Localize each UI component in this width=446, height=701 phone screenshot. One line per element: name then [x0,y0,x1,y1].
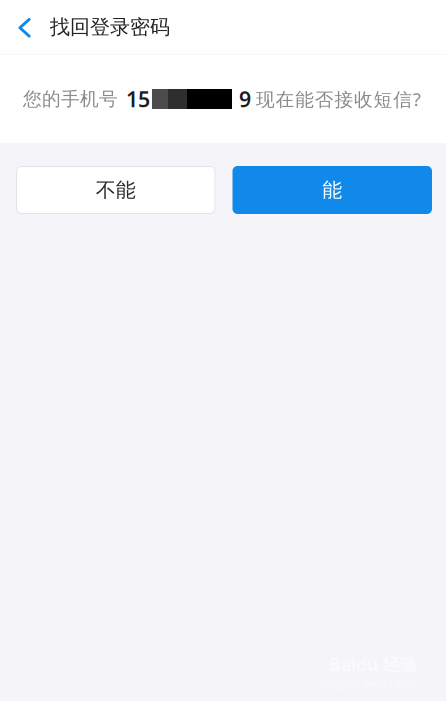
button[interactable]: Back [0,0,50,54]
staticText: 9 [239,85,251,113]
button[interactable]: 能 [232,166,432,214]
staticText: 不能 [96,178,136,202]
staticText: 您的手机号 [23,87,118,110]
staticText: 能 [322,178,342,202]
staticText: 找回登录密码 [50,15,170,39]
button[interactable]: 不能 [16,166,215,214]
staticText: 现在能否接收短信? [256,87,421,111]
staticText: 15 [126,85,150,113]
